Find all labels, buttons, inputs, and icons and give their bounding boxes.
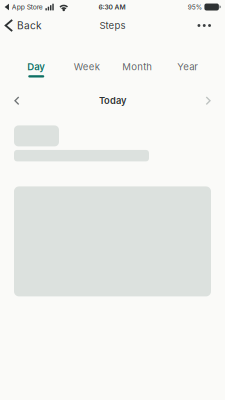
staticText: Week (74, 61, 100, 73)
button[interactable]: More options (189, 16, 225, 35)
staticText: 95% (188, 3, 202, 11)
staticText: App Store (12, 3, 43, 11)
staticText: Steps (99, 20, 125, 31)
button[interactable]: Next day (195, 89, 221, 112)
staticText: Back (17, 19, 42, 32)
button[interactable]: Previous day (4, 89, 30, 112)
staticText: Month (122, 61, 152, 73)
button[interactable]: Back (0, 13, 48, 38)
staticText: Today (99, 95, 126, 106)
staticText: Day (27, 61, 45, 73)
button[interactable]: Week (61, 59, 112, 79)
button[interactable]: Month (112, 59, 162, 79)
button[interactable]: Day (11, 59, 61, 79)
staticText: 6:30 AM (99, 3, 126, 11)
staticText: Year (177, 61, 198, 73)
button[interactable]: Year (162, 59, 213, 79)
